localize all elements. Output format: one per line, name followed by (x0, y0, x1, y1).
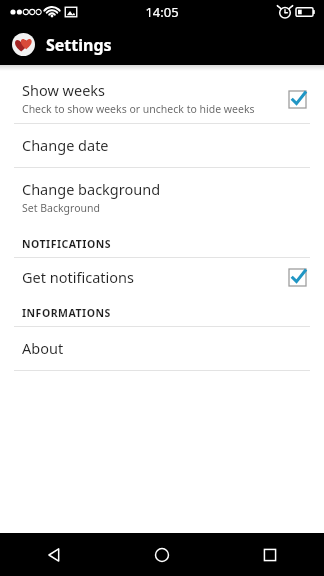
button[interactable]: Back (0, 533, 108, 576)
staticText: Change background (22, 179, 161, 199)
button[interactable]: Get notifications (284, 264, 310, 290)
staticText: Get notifications (22, 267, 284, 287)
button[interactable]: Home (108, 533, 216, 576)
button[interactable]: Show weeks (0, 74, 324, 123)
staticText: About (22, 338, 64, 358)
staticText: Change date (22, 135, 109, 155)
button[interactable]: Recent apps (216, 533, 324, 576)
button[interactable]: About (0, 327, 324, 370)
button[interactable]: Change date (0, 124, 324, 167)
staticText: Settings (46, 34, 112, 56)
staticText: Set Background (22, 201, 100, 215)
staticText: INFORMATIONS (22, 306, 111, 320)
button[interactable]: Show weeks (284, 86, 310, 112)
staticText: 14:05 (145, 3, 179, 21)
staticText: NOTIFICATIONS (22, 237, 112, 251)
button[interactable]: Settings (0, 24, 324, 65)
button[interactable]: Change background (0, 168, 324, 227)
button[interactable]: Get notifications (0, 258, 324, 296)
staticText: Check to show weeks or uncheck to hide w… (22, 102, 255, 116)
staticText: Show weeks (22, 80, 106, 100)
